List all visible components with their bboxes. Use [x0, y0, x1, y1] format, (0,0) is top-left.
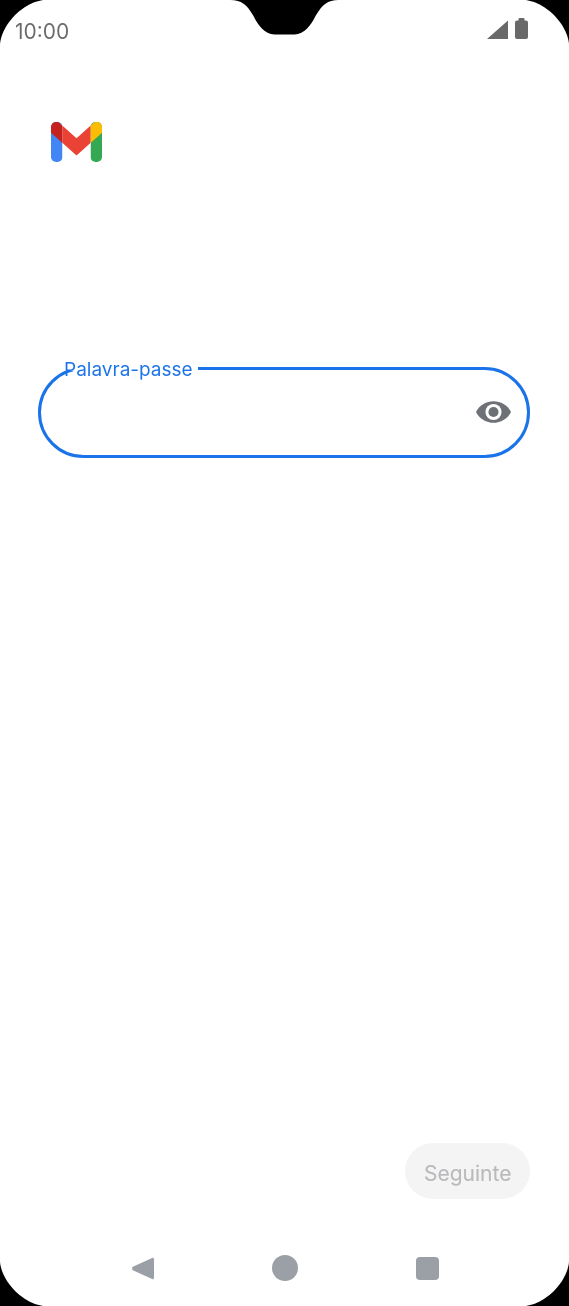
- button[interactable]: Back: [114, 1240, 170, 1296]
- button[interactable]: Palavra-passe: [38, 367, 530, 458]
- staticText: Palavra-passe: [64, 358, 193, 381]
- button[interactable]: Show password: [469, 388, 517, 436]
- staticText: 10:00: [15, 19, 70, 44]
- button[interactable]: Home: [257, 1240, 313, 1296]
- button[interactable]: Recent apps: [399, 1240, 455, 1296]
- button[interactable]: Seguinte: [405, 1143, 530, 1199]
- staticText: Seguinte: [424, 1161, 512, 1186]
